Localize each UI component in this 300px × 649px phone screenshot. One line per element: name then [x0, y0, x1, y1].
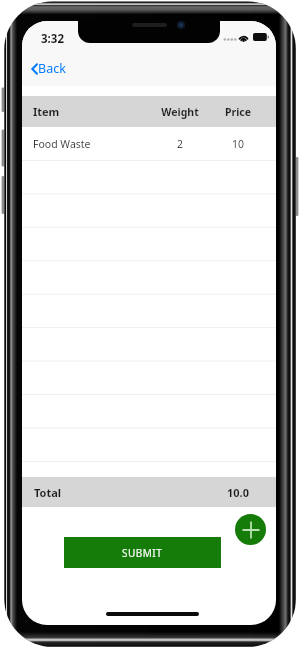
staticText: Back — [38, 60, 66, 77]
button[interactable]: SUBMIT — [64, 537, 221, 568]
staticText: 10 — [200, 137, 276, 151]
staticText: SUBMIT — [122, 546, 163, 560]
staticText: Food Waste — [33, 137, 91, 151]
button[interactable]: Food Waste — [22, 127, 276, 160]
staticText: Weight — [160, 105, 200, 119]
staticText: 3:32 — [41, 31, 64, 47]
button[interactable]: Back — [28, 57, 66, 80]
staticText: 10.0 — [200, 485, 276, 500]
staticText: Item — [33, 104, 60, 119]
staticText: Price — [200, 105, 276, 119]
staticText: Total — [34, 485, 62, 500]
button[interactable]: Add new item — [235, 514, 266, 545]
staticText: 2 — [160, 137, 200, 151]
